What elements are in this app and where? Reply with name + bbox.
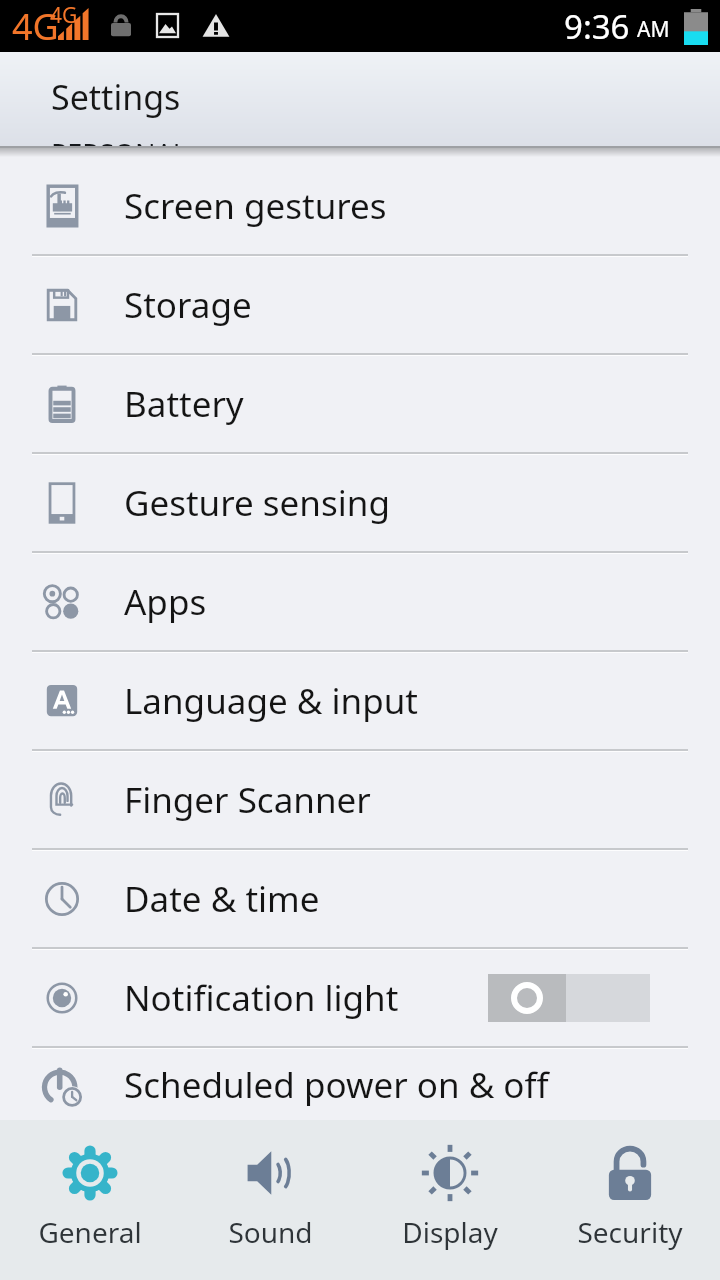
staticText: Display — [402, 1213, 498, 1251]
staticText: 9:36 — [564, 4, 630, 49]
button[interactable]: Date & time — [0, 851, 720, 947]
staticText: Storage — [124, 281, 252, 329]
staticText: Finger Scanner — [124, 776, 371, 824]
button[interactable]: Finger Scanner — [0, 752, 720, 848]
button[interactable]: Notification light switch — [488, 974, 650, 1022]
staticText: Date & time — [124, 875, 320, 923]
staticText: Sound — [228, 1213, 313, 1251]
staticText: Scheduled power on & off — [124, 1061, 549, 1109]
button[interactable]: Security — [540, 1120, 720, 1280]
button[interactable]: Notification light — [0, 950, 720, 1046]
staticText: AM — [637, 15, 670, 44]
button[interactable]: Apps — [0, 554, 720, 650]
button[interactable]: Language & input — [0, 653, 720, 749]
staticText: General — [38, 1213, 142, 1251]
button[interactable]: General — [0, 1120, 180, 1280]
button[interactable]: Battery — [0, 356, 720, 452]
button[interactable]: Gesture sensing — [0, 455, 720, 551]
button[interactable]: Storage — [0, 257, 720, 353]
staticText: Battery — [124, 380, 244, 428]
staticText: Language & input — [124, 677, 418, 725]
staticText: PERSONAL — [51, 135, 187, 146]
button[interactable]: Display — [360, 1120, 540, 1280]
staticText: 4G — [50, 1, 78, 30]
staticText: Security — [577, 1213, 683, 1251]
staticText: Settings — [51, 74, 181, 120]
staticText: Screen gestures — [124, 182, 387, 230]
staticText: Apps — [124, 578, 207, 626]
staticText: 4G — [12, 2, 59, 51]
button[interactable]: Sound — [180, 1120, 360, 1280]
button[interactable]: Scheduled power on & off — [0, 1049, 720, 1120]
staticText: Gesture sensing — [124, 479, 390, 527]
staticText: Notification light — [124, 974, 399, 1022]
button[interactable]: Screen gestures — [0, 158, 720, 254]
